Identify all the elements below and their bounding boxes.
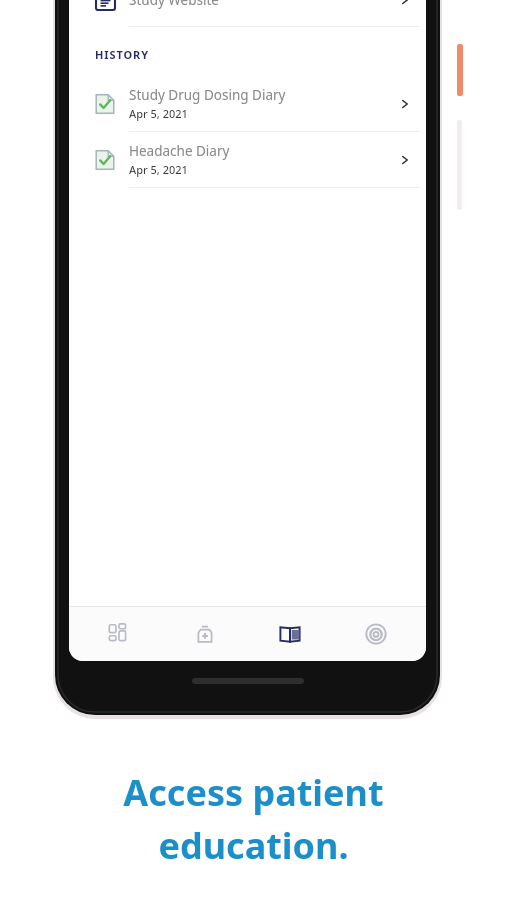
- button[interactable]: Study Website: [69, 0, 426, 26]
- staticText: Study Website: [129, 0, 219, 9]
- button[interactable]: Progress: [340, 607, 412, 661]
- button[interactable]: Dashboard: [83, 607, 155, 661]
- staticText: Apr 5, 2021: [129, 162, 188, 177]
- staticText: education.: [158, 821, 349, 870]
- staticText: Study Drug Dosing Diary: [129, 86, 286, 104]
- button[interactable]: Education: [254, 607, 326, 661]
- staticText: Apr 5, 2021: [129, 106, 188, 121]
- button[interactable]: Health: [169, 607, 241, 661]
- button[interactable]: Study Drug Dosing Diary: [69, 76, 426, 131]
- staticText: Access patient: [123, 768, 384, 817]
- staticText: Headache Diary: [129, 142, 230, 160]
- button[interactable]: Headache Diary: [69, 132, 426, 187]
- staticText: HISTORY: [95, 47, 149, 62]
